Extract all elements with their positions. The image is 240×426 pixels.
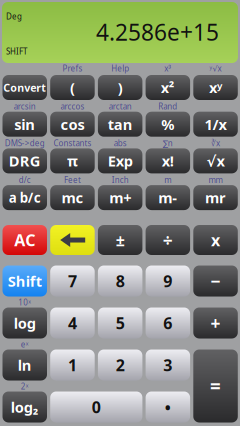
staticText: a b/c xyxy=(9,189,41,206)
button[interactable]: 9 xyxy=(146,265,190,296)
button[interactable]: log₂ xyxy=(2,391,47,422)
staticText: Exp xyxy=(108,151,133,171)
staticText: arctan xyxy=(109,101,132,112)
button[interactable]: Backspace xyxy=(50,225,95,255)
staticText: x! xyxy=(162,151,174,171)
staticText: ± xyxy=(116,229,125,251)
staticText: sin xyxy=(14,114,35,134)
button[interactable]: tan xyxy=(98,112,142,137)
button[interactable]: Shift xyxy=(2,265,47,296)
staticText: 8 xyxy=(116,270,125,292)
staticText: mc xyxy=(61,188,83,207)
staticText: mr xyxy=(205,188,226,207)
button[interactable]: mc xyxy=(50,185,95,210)
button[interactable]: 7 xyxy=(50,265,95,296)
staticText: 9 xyxy=(163,270,172,292)
button[interactable]: log xyxy=(2,307,47,338)
button[interactable]: ln xyxy=(2,349,47,380)
button[interactable]: AC xyxy=(2,225,47,255)
button[interactable]: Exp xyxy=(98,148,142,173)
button[interactable]: − xyxy=(193,265,238,296)
staticText: ∑n xyxy=(163,138,173,148)
staticText: 10ˣ xyxy=(18,297,31,308)
button[interactable]: 1/x xyxy=(193,112,238,137)
button[interactable]: 2 xyxy=(98,349,142,380)
staticText: DRG xyxy=(9,151,41,171)
staticText: m- xyxy=(158,188,177,207)
staticText: xʸ xyxy=(209,78,222,97)
button[interactable]: a b/c xyxy=(2,185,47,210)
button[interactable]: • xyxy=(146,391,190,422)
button[interactable]: 4 xyxy=(50,307,95,338)
staticText: 1 xyxy=(68,354,77,376)
button[interactable]: m+ xyxy=(98,185,142,210)
button[interactable]: ± xyxy=(98,225,142,255)
button[interactable]: x! xyxy=(146,148,190,173)
staticText: 4 xyxy=(68,312,77,334)
staticText: ∛x xyxy=(211,138,220,148)
staticText: mm xyxy=(209,175,223,185)
staticText: Convert xyxy=(3,80,46,95)
staticText: tan xyxy=(108,114,133,134)
staticText: 7 xyxy=(68,270,77,292)
staticText: • xyxy=(165,396,171,418)
staticText: arcsin xyxy=(14,101,36,112)
button[interactable]: xʸ xyxy=(193,75,238,100)
button[interactable]: DRG xyxy=(2,148,47,173)
staticText: ʸ√x xyxy=(210,63,222,74)
button[interactable]: 8 xyxy=(98,265,142,296)
staticText: AC xyxy=(14,229,35,251)
staticText: ( xyxy=(70,78,75,97)
staticText: ÷ xyxy=(163,228,173,251)
button[interactable]: √x xyxy=(193,148,238,173)
button[interactable]: ÷ xyxy=(146,225,190,255)
button[interactable]: 3 xyxy=(146,349,190,380)
staticText: log₂ xyxy=(11,397,39,417)
button[interactable]: ) xyxy=(98,75,142,100)
button[interactable]: 6 xyxy=(146,307,190,338)
staticText: ) xyxy=(118,78,123,97)
button[interactable]: x xyxy=(193,225,238,255)
button[interactable]: 1 xyxy=(50,349,95,380)
staticText: eˣ xyxy=(21,339,29,350)
staticText: 0 xyxy=(92,396,101,418)
staticText: + xyxy=(211,311,221,334)
staticText: = xyxy=(210,374,221,398)
staticText: 3 xyxy=(163,354,172,376)
button[interactable]: x² xyxy=(146,75,190,100)
staticText: Shift xyxy=(8,271,42,291)
staticText: Deg xyxy=(6,11,22,22)
staticText: 6 xyxy=(163,312,172,334)
staticText: % xyxy=(161,114,174,134)
staticText: 2 xyxy=(116,354,125,376)
staticText: 4.2586e+15 xyxy=(96,17,219,47)
button[interactable]: ( xyxy=(50,75,95,100)
button[interactable]: + xyxy=(193,307,238,338)
button[interactable]: % xyxy=(146,112,190,137)
button[interactable]: sin xyxy=(2,112,47,137)
staticText: DMS->deg xyxy=(5,138,45,148)
staticText: Rand xyxy=(158,101,177,112)
button[interactable]: 0 xyxy=(50,391,142,422)
button[interactable]: = xyxy=(193,349,238,422)
staticText: Prefs xyxy=(62,63,82,74)
button[interactable]: π xyxy=(50,148,95,173)
button[interactable]: m- xyxy=(146,185,190,210)
staticText: cos xyxy=(60,114,84,134)
staticText: m+ xyxy=(109,188,131,207)
staticText: 2ˣ xyxy=(21,381,29,392)
staticText: √x xyxy=(207,151,225,171)
staticText: m xyxy=(164,175,171,185)
staticText: d/c xyxy=(19,175,31,185)
button[interactable]: Convert xyxy=(2,75,47,100)
staticText: SHIFT xyxy=(6,46,27,57)
staticText: x xyxy=(211,229,220,251)
staticText: Help xyxy=(111,63,129,74)
staticText: abs xyxy=(114,138,127,148)
button[interactable]: cos xyxy=(50,112,95,137)
button[interactable]: 5 xyxy=(98,307,142,338)
staticText: log xyxy=(14,313,36,333)
staticText: Constants xyxy=(53,138,91,148)
staticText: 5 xyxy=(116,312,125,334)
button[interactable]: mr xyxy=(193,185,238,210)
